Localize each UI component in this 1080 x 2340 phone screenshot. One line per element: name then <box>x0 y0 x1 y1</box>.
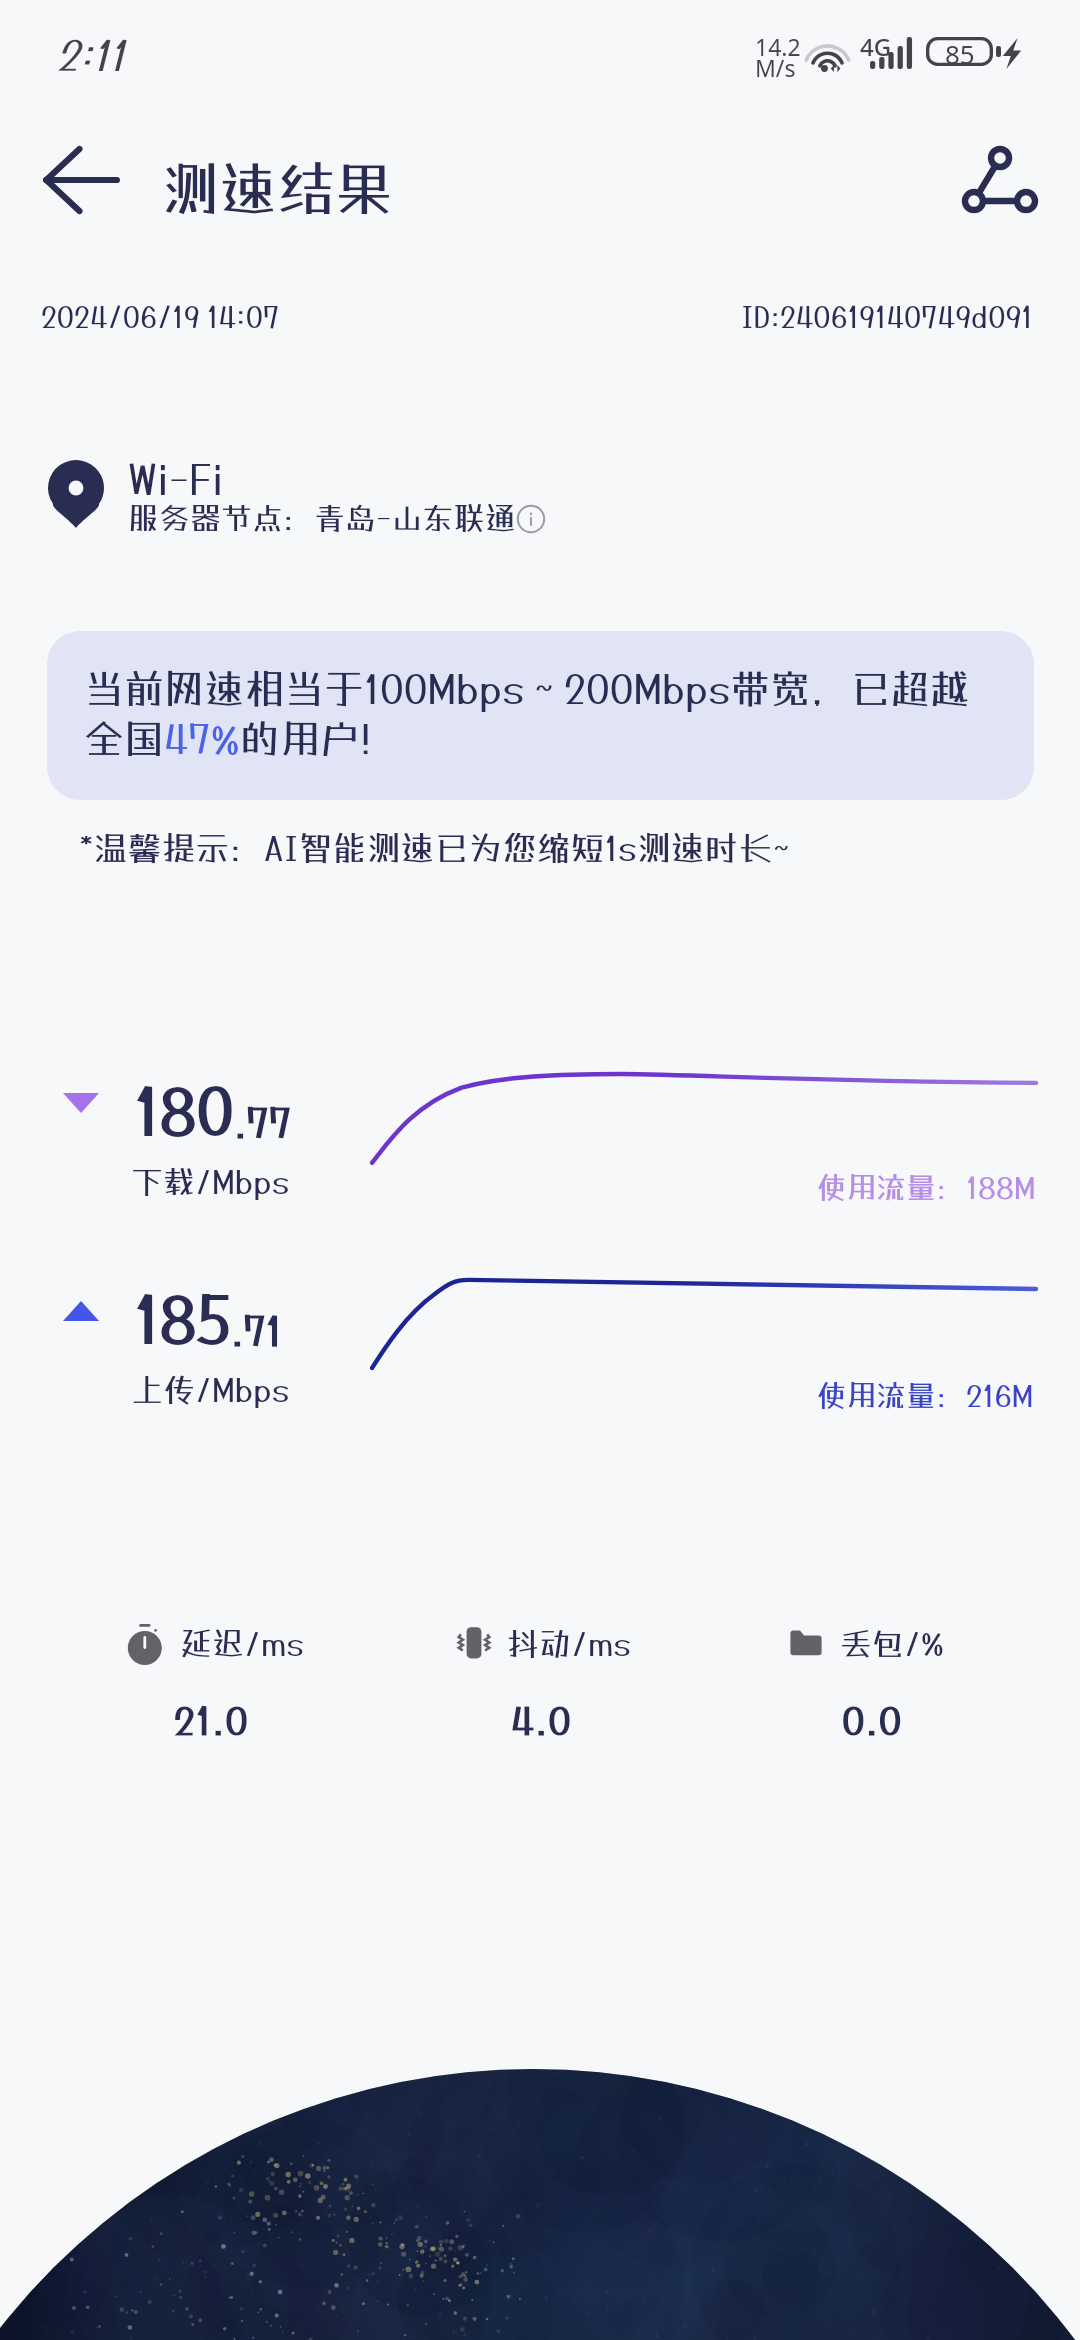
staticText: 21.0 <box>174 1698 250 1743</box>
staticText: .77 <box>234 1099 292 1146</box>
staticText: 0.0 <box>842 1698 903 1743</box>
button[interactable]: Back <box>42 143 120 217</box>
staticText: 延迟/ms <box>180 1625 304 1663</box>
button[interactable]: 丢包/% <box>788 1624 1048 1744</box>
button[interactable]: 抖动/ms <box>455 1624 715 1744</box>
staticText: .71 <box>231 1307 282 1354</box>
staticText: 2024/06/19 14:07 <box>41 300 280 334</box>
staticText: 下载/Mbps <box>131 1163 290 1201</box>
button[interactable]: Share <box>956 140 1042 220</box>
staticText: 当前网速相当于100Mbps ~ 200Mbps带宽，已超越 全国47%的用户! <box>84 665 971 762</box>
staticText: 4G <box>860 30 892 63</box>
staticText: 14.2 <box>755 31 801 62</box>
staticText: 4.0 <box>511 1698 573 1743</box>
staticText: 使用流量：216M <box>816 1378 1034 1413</box>
staticText: 抖动/ms <box>507 1625 631 1663</box>
staticText: 2:11 <box>56 31 125 79</box>
staticText: 使用流量：188M <box>816 1170 1036 1205</box>
staticText: 服务器节点：青岛-山东联通 <box>128 500 516 537</box>
button[interactable]: 当前网速相当于100Mbps ~ 200Mbps带宽，已超越 全国47%的用户! <box>47 631 1034 800</box>
button[interactable]: 延迟/ms <box>128 1624 388 1744</box>
staticText: 测速结果 <box>161 154 394 222</box>
staticText: 上传/Mbps <box>131 1371 290 1409</box>
staticText: 85 <box>945 36 975 65</box>
staticText: 丢包/% <box>840 1625 944 1663</box>
staticText: 185 <box>135 1282 231 1355</box>
staticText: M/s <box>755 52 796 83</box>
staticText: 180 <box>135 1074 234 1147</box>
staticText: ID:240619140749d091 <box>741 300 1033 334</box>
staticText: *温馨提示：AI智能测速已为您缩短1s测速时长~ <box>79 828 790 868</box>
staticText: Wi-Fi <box>128 455 224 503</box>
